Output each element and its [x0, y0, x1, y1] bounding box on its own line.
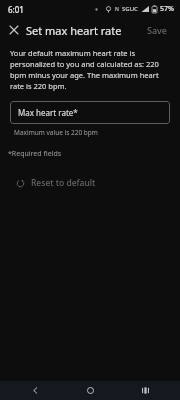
button[interactable]: Reset to default: [10, 173, 102, 193]
staticText: N: [115, 6, 119, 13]
button[interactable]: Home: [70, 381, 110, 400]
staticText: *Required fields: [8, 149, 62, 159]
staticText: Your default maximum heart rate is perso…: [10, 48, 168, 91]
staticText: SGUC: [122, 5, 138, 13]
staticText: Max heart rate*: [18, 107, 78, 118]
button[interactable]: Close: [4, 20, 24, 40]
button[interactable]: Back: [15, 381, 55, 400]
staticText: Reset to default: [31, 177, 96, 189]
staticText: 57%: [160, 4, 174, 14]
button[interactable]: Max heart rate*: [10, 101, 170, 124]
button[interactable]: Recent apps: [125, 381, 165, 400]
staticText: Set max heart rate: [26, 23, 122, 38]
button[interactable]: Save: [143, 21, 172, 39]
staticText: Save: [147, 24, 168, 36]
staticText: Maximum value is 220 bpm: [14, 128, 98, 137]
staticText: 6:01: [8, 4, 24, 15]
